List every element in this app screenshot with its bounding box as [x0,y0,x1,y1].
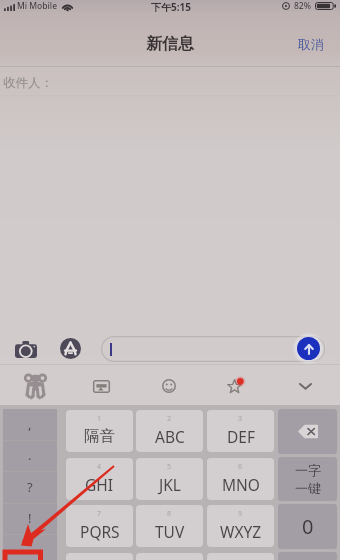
button[interactable]: 2 [136,410,203,452]
button[interactable]: App Store [54,332,86,364]
button[interactable]: 1 [66,410,133,452]
staticText: TUV [155,521,185,542]
staticText: 0 [302,513,314,540]
button[interactable]: , [3,409,57,440]
button[interactable]: 6 [207,458,274,500]
staticText: MNO [222,474,260,495]
staticText: 隔音 [84,426,115,446]
button[interactable]: 3 [207,410,274,452]
staticText: JKL [159,474,181,495]
button[interactable]: 一字 [278,457,337,501]
button[interactable]: Memoji [19,370,51,402]
button[interactable]: 9 [207,505,274,547]
staticText: DEF [227,426,255,447]
staticText: 6 [238,462,243,472]
button[interactable] [278,409,337,454]
staticText: 下午5:15 [151,0,191,12]
button[interactable]: 8 [136,505,203,547]
button[interactable]: 0 [278,504,337,549]
staticText: 2 [167,414,172,424]
staticText: 一键 [295,480,321,496]
button[interactable]: 4 [66,458,133,500]
staticText: 9 [238,509,243,519]
staticText: ABC [155,426,185,447]
staticText: 7 [97,509,102,519]
staticText: , [28,415,32,433]
button[interactable]: 取消 [282,28,340,60]
button[interactable] [3,535,57,560]
staticText: 新信息 [146,34,194,54]
staticText: 收件人： [3,75,53,91]
staticText: 4 [97,462,102,472]
staticText: ! [28,509,32,527]
staticText: 1 [97,414,102,424]
staticText: PQRS [80,521,120,542]
button[interactable]: ? [3,472,57,503]
staticText: 取消 [298,36,324,52]
button[interactable]: 5 [136,458,203,500]
button[interactable]: 收件人： [0,67,340,96]
button[interactable]: ! [3,503,57,534]
button[interactable]: Camera [10,333,42,365]
button[interactable]: Emoji [153,370,185,402]
staticText: Mi Mobile [17,0,58,12]
staticText: GHI [85,474,114,495]
button[interactable]: Send [297,337,320,360]
staticText: . [28,446,32,464]
staticText: 82% [294,0,311,12]
staticText: ? [27,478,33,496]
staticText: 3 [238,414,243,424]
button[interactable]: Collapse [289,370,321,402]
staticText: 8 [167,509,172,519]
staticText: 5 [167,462,172,472]
staticText: 一字 [295,462,321,478]
button[interactable]: 7 [66,505,133,547]
button[interactable]: Photos [85,370,117,402]
staticText: WXYZ [220,521,262,542]
button[interactable] [101,336,325,362]
button[interactable]: Apps [220,370,252,402]
